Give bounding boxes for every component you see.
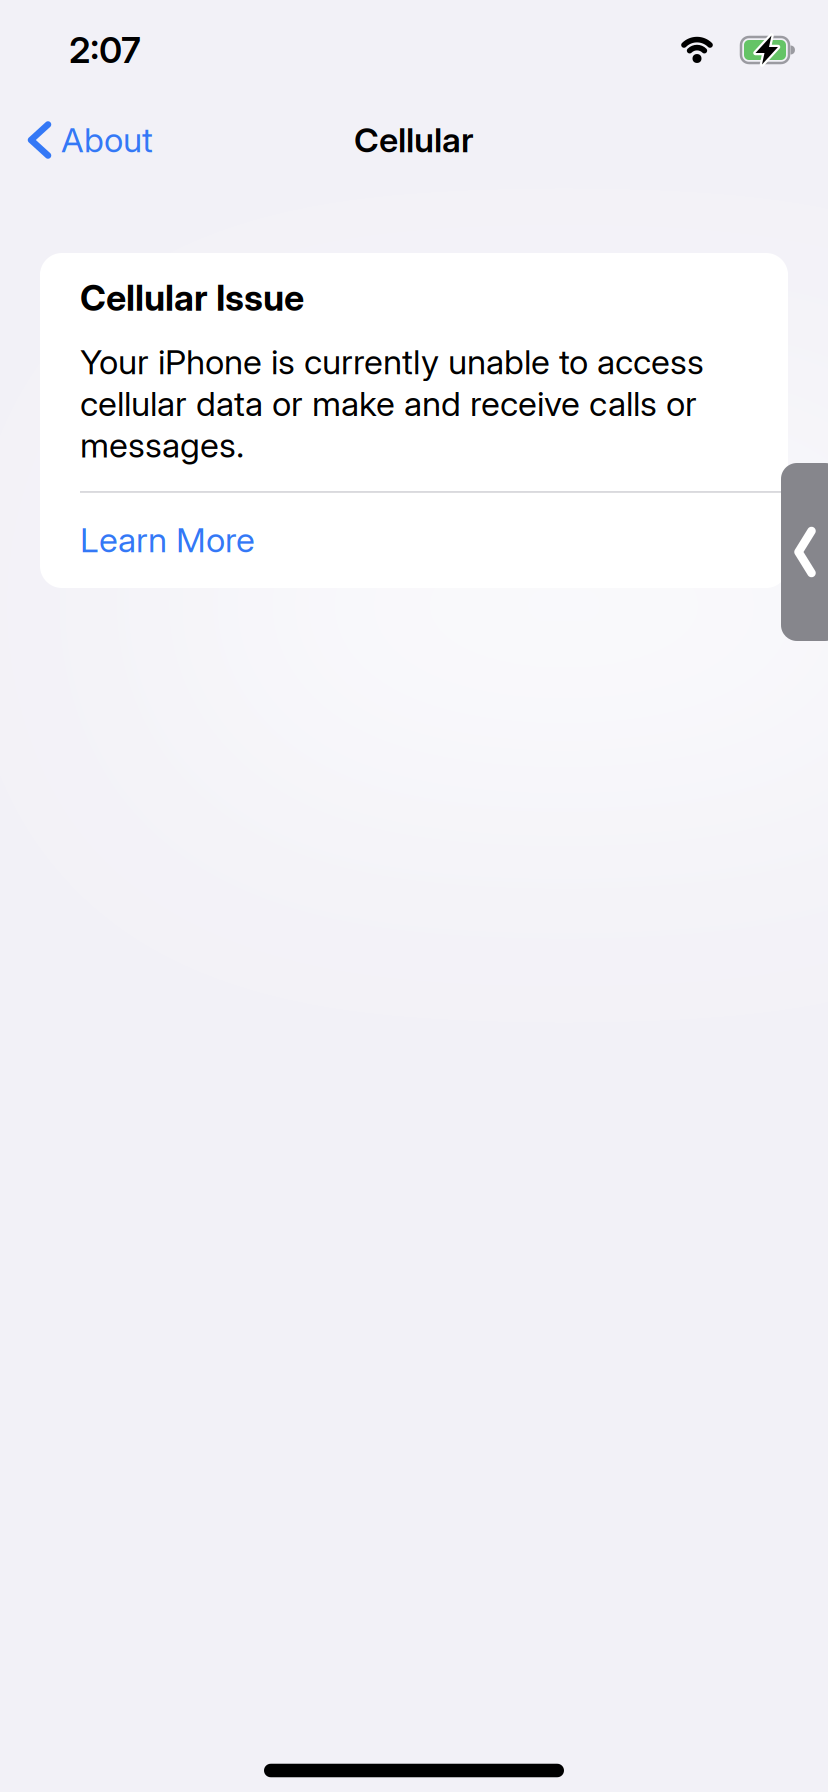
button[interactable]: Learn More xyxy=(80,493,255,584)
staticText: About xyxy=(61,120,153,160)
button[interactable]: About xyxy=(0,120,153,160)
staticText: Cellular Issue xyxy=(80,277,304,319)
button[interactable]: Hide panel xyxy=(781,463,828,641)
staticText: Your iPhone is currently unable to acces… xyxy=(80,342,704,465)
staticText: 2:07 xyxy=(69,29,141,71)
staticText: Cellular xyxy=(354,120,474,160)
staticText: Learn More xyxy=(80,520,255,560)
